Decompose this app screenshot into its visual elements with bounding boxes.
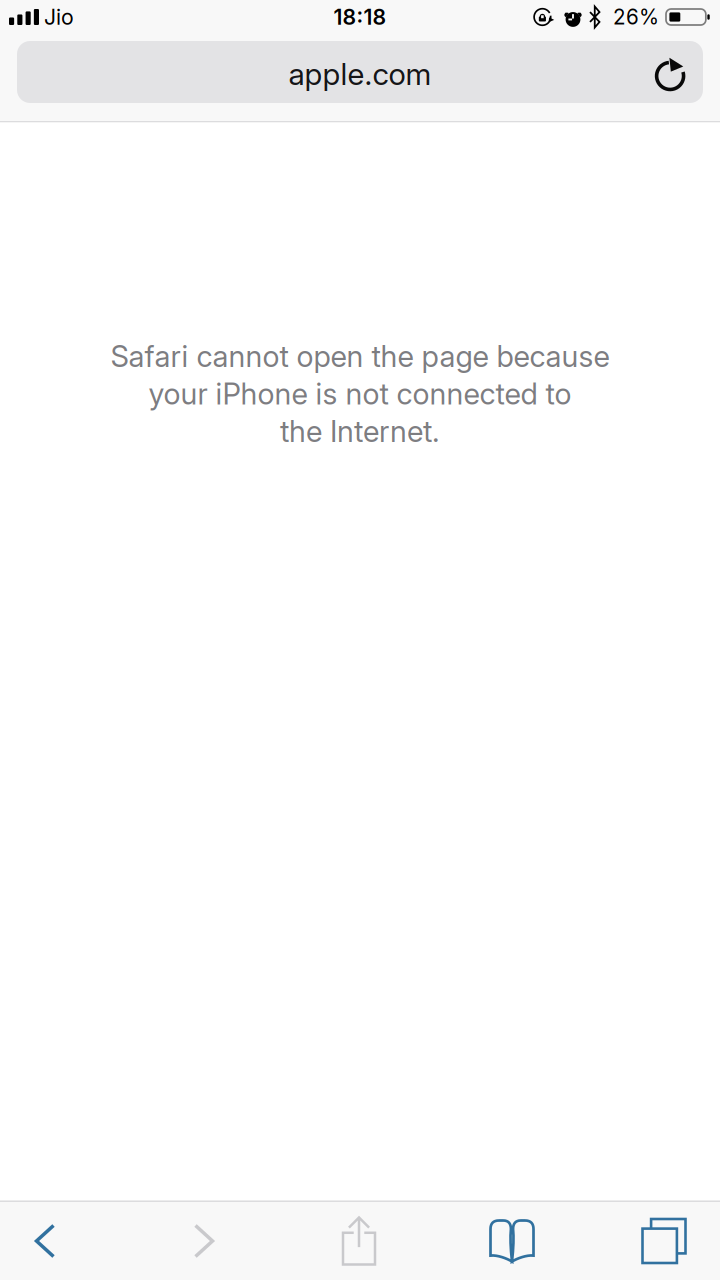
staticText: 26%: [613, 4, 659, 29]
button[interactable]: Share: [288, 1202, 432, 1280]
staticText: Jio: [44, 4, 74, 30]
staticText: apple.com: [288, 56, 431, 92]
button[interactable]: Back: [0, 1202, 144, 1280]
button[interactable]: apple.com: [0, 41, 720, 121]
button[interactable]: Bookmarks: [432, 1202, 576, 1280]
staticText: 18:18: [333, 4, 386, 30]
button[interactable]: Tabs: [576, 1202, 720, 1280]
staticText: your iPhone is not connected to: [148, 376, 571, 411]
staticText: the Internet.: [280, 413, 440, 449]
button[interactable]: Forward: [144, 1202, 288, 1280]
staticText: Safari cannot open the page because: [110, 338, 609, 374]
